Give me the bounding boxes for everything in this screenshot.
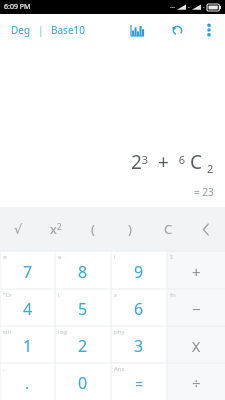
staticText: Base10 — [51, 23, 85, 37]
staticText: 3 — [134, 335, 144, 357]
staticText: − — [192, 299, 201, 319]
staticText: π — [3, 253, 7, 261]
staticText: 8 — [78, 261, 88, 283]
staticText: , — [3, 365, 5, 373]
button[interactable]: ( — [74, 207, 111, 251]
staticText: 4 — [23, 298, 33, 320]
staticText: Σ — [170, 253, 174, 261]
button[interactable]: Σ — [167, 251, 225, 289]
button[interactable]: More options — [197, 18, 221, 42]
button[interactable]: Backspace — [187, 207, 225, 251]
staticText: · — [188, 3, 190, 11]
staticText: ) — [128, 220, 132, 238]
staticText: | — [38, 23, 44, 37]
staticText: √ — [14, 222, 23, 237]
button[interactable]: Ans — [111, 363, 167, 400]
button[interactable]: i — [111, 251, 167, 289]
button[interactable]: Base10 — [49, 20, 87, 40]
staticText: log — [58, 328, 67, 336]
staticText: ÷ — [192, 373, 201, 393]
staticText: Ans — [114, 365, 125, 373]
staticText: 5 — [78, 298, 88, 320]
staticText: 6:09 PM — [4, 2, 31, 12]
staticText: ⁿCr — [3, 291, 12, 299]
button[interactable]: log — [55, 326, 111, 363]
staticText: x — [114, 291, 118, 299]
staticText: · — [203, 3, 205, 11]
staticText: . — [25, 372, 30, 394]
staticText: C — [164, 220, 173, 238]
button[interactable]: sin — [0, 326, 55, 363]
button[interactable]: phy — [111, 326, 167, 363]
button[interactable]: Graph — [123, 16, 151, 44]
staticText: = — [135, 374, 144, 393]
button[interactable]: e — [55, 251, 111, 289]
staticText: 2 — [78, 335, 88, 357]
staticText: x2 — [50, 220, 62, 238]
button[interactable]: π — [0, 251, 55, 289]
staticText: 6 — [134, 298, 144, 320]
button[interactable]: ! — [55, 289, 111, 326]
staticText: phy — [114, 328, 125, 336]
staticText: 9 — [134, 261, 144, 283]
button[interactable]: 0 — [55, 363, 111, 400]
staticText: Deg — [11, 23, 31, 37]
staticText: = 23 — [194, 185, 214, 199]
staticText: i — [114, 253, 116, 261]
staticText: ( — [91, 220, 95, 238]
staticText: 0 — [78, 372, 88, 394]
button[interactable]: x2 — [37, 207, 74, 251]
button[interactable]: ÷ — [167, 363, 225, 400]
button[interactable]: X — [167, 326, 225, 363]
staticText: 7 — [23, 261, 33, 283]
staticText: 23 + 6 C 2 — [131, 149, 214, 176]
button[interactable]: History — [163, 16, 191, 44]
staticText: fn — [170, 291, 176, 299]
button[interactable]: Deg — [9, 20, 33, 40]
button[interactable]: ⁿCr — [0, 289, 55, 326]
staticText: 1 — [23, 335, 33, 357]
staticText: ··· — [170, 3, 175, 11]
button[interactable]: ) — [111, 207, 149, 251]
button[interactable]: C — [149, 207, 187, 251]
staticText: + — [192, 262, 201, 282]
staticText: e — [58, 253, 62, 261]
staticText: X — [192, 337, 201, 356]
button[interactable]: fn — [167, 289, 225, 326]
button[interactable]: √ — [0, 207, 37, 251]
button[interactable]: x — [111, 289, 167, 326]
button[interactable]: , — [0, 363, 55, 400]
staticText: sin — [3, 328, 12, 336]
staticText: ! — [58, 291, 60, 299]
